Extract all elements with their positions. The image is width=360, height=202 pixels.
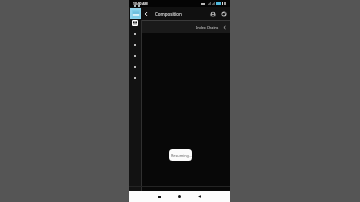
button[interactable]: Index Chains xyxy=(142,21,230,33)
button[interactable]: Back xyxy=(142,10,150,18)
staticText: Resuming... xyxy=(171,153,192,158)
staticText: Index Chains xyxy=(196,25,219,30)
button[interactable]: App icon xyxy=(130,8,141,19)
button[interactable]: Settings xyxy=(219,9,228,18)
button[interactable]: Undo xyxy=(208,9,217,18)
staticText: 10:50 AM xyxy=(133,1,148,5)
button[interactable]: Back xyxy=(193,191,206,202)
button[interactable]: Media xyxy=(132,20,138,26)
button[interactable]: Recents xyxy=(153,191,166,202)
button[interactable]: Resuming... xyxy=(169,149,192,161)
button[interactable]: Home xyxy=(173,191,186,202)
staticText: Composition xyxy=(155,11,182,17)
